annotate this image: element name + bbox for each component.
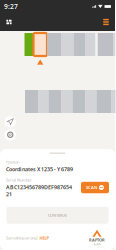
staticText: Position <box>6 159 19 165</box>
button[interactable]: Something wrong? <box>6 235 49 240</box>
staticText: SCAN <box>86 185 97 190</box>
staticText: ABC123456789DEF98765421 <box>6 184 72 198</box>
button[interactable]: CONTINUE <box>6 207 108 224</box>
button[interactable]: Settings <box>4 129 16 140</box>
staticText: RAPTOR <box>89 237 105 242</box>
staticText: 9:27 <box>4 2 18 11</box>
staticText: HELP <box>40 235 49 240</box>
staticText: Serial Number <box>6 177 32 183</box>
button[interactable]: Tasks <box>100 15 112 29</box>
staticText: Something wrong? <box>6 235 38 240</box>
button[interactable]: SCAN <box>81 182 109 193</box>
staticText: SCAN <box>93 242 100 246</box>
button[interactable]: Navigate <box>4 116 16 127</box>
staticText: Coordinates X 1235 - Y 6789 <box>6 166 73 173</box>
staticText: CONTINUE <box>48 213 67 218</box>
button[interactable]: Menu <box>3 15 15 29</box>
